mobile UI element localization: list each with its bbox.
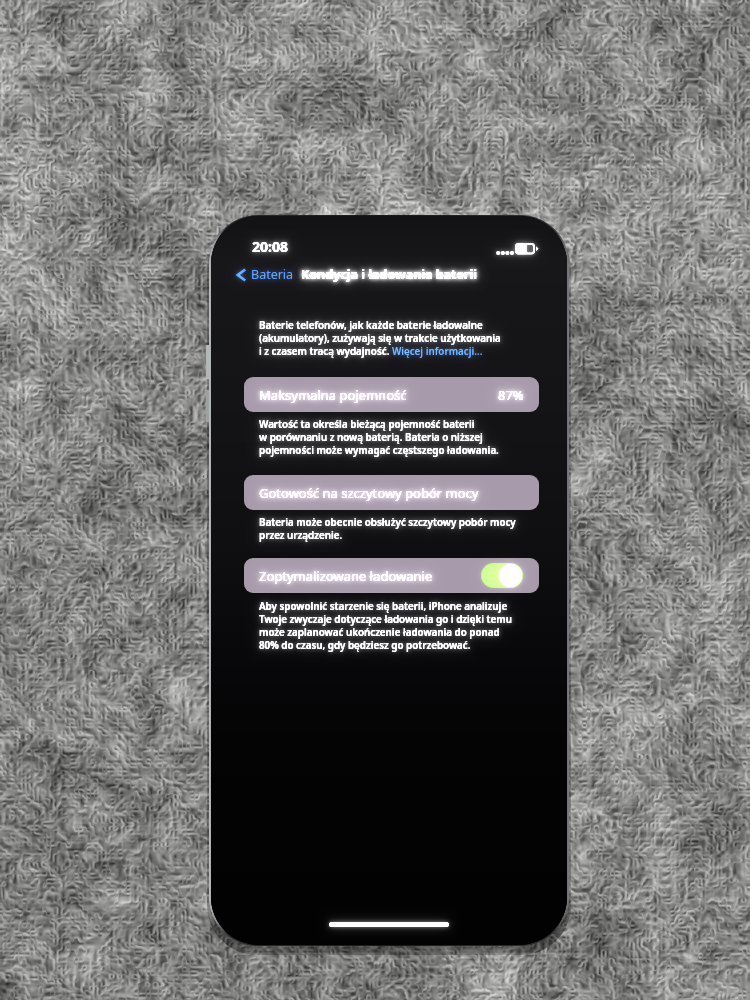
staticText: 80% do czasu, gdy będziesz go potrzebowa…: [259, 639, 471, 652]
staticText: 87%: [498, 386, 524, 404]
staticText: Wartość ta określa bieżącą pojemność bat…: [259, 418, 475, 431]
staticText: w porównaniu z nową baterią. Bateria o n…: [259, 431, 483, 444]
staticText: 20:08: [252, 237, 288, 256]
staticText: przez urządzenie.: [259, 529, 343, 542]
staticText: Bateria: [251, 266, 294, 283]
staticText: Wartość ta określa bieżącą pojemność bat…: [259, 418, 475, 431]
staticText: i z czasem tracą wydajność. Więcej infor…: [259, 345, 483, 358]
staticText: przez urządzenie.: [259, 529, 343, 542]
staticText: w porównaniu z nową baterią. Bateria o n…: [259, 431, 483, 444]
staticText: 87%: [498, 386, 524, 404]
staticText: Zoptymalizowane ładowanie: [259, 567, 433, 585]
staticText: Bateria: [251, 266, 294, 283]
staticText: Bateria: [251, 266, 294, 283]
staticText: w porównaniu z nową baterią. Bateria o n…: [259, 431, 483, 444]
staticText: Bateria: [251, 266, 294, 283]
staticText: Bateria może obecnie obsłużyć szczytowy …: [259, 516, 516, 529]
staticText: Kondycja i ładowanie baterii: [301, 266, 478, 283]
button[interactable]: Gotowość na szczytowy pobór mocy: [244, 475, 539, 510]
button[interactable]: Zoptymalizowane ładowanie: [244, 558, 539, 593]
staticText: może zaplanować ukończenie ładowania do …: [259, 626, 500, 639]
staticText: Bateria może obecnie obsłużyć szczytowy …: [259, 516, 516, 529]
staticText: Baterie telefonów, jak każde baterie ład…: [259, 319, 483, 332]
button[interactable]: Back to Bateria: [236, 266, 294, 283]
staticText: (akumulatory), zużywają się w trakcie uż…: [259, 332, 501, 345]
staticText: Aby spowolnić starzenie się baterii, iPh…: [259, 600, 508, 613]
staticText: 20:08: [252, 237, 288, 256]
staticText: (akumulatory), zużywają się w trakcie uż…: [259, 332, 501, 345]
staticText: Wartość ta określa bieżącą pojemność bat…: [259, 418, 475, 431]
staticText: Bateria może obecnie obsłużyć szczytowy …: [259, 516, 516, 529]
button[interactable]: Zoptymalizowane ładowanie, on: [481, 563, 523, 588]
staticText: Maksymalna pojemność: [259, 386, 407, 404]
button[interactable]: Maksymalna pojemność: [244, 377, 539, 412]
staticText: przez urządzenie.: [259, 529, 343, 542]
staticText: Maksymalna pojemność: [259, 386, 407, 404]
staticText: Twoje zwyczaje dotyczące ładowania go i …: [259, 613, 512, 626]
staticText: Twoje zwyczaje dotyczące ładowania go i …: [259, 613, 512, 626]
staticText: Bateria: [251, 266, 294, 283]
staticText: Gotowość na szczytowy pobór mocy: [259, 484, 479, 502]
staticText: pojemności może wymagać częstszego ładow…: [259, 444, 499, 457]
staticText: i z czasem tracą wydajność. Więcej infor…: [259, 345, 483, 358]
staticText: może zaplanować ukończenie ładowania do …: [259, 626, 500, 639]
staticText: 87%: [498, 386, 524, 404]
staticText: 80% do czasu, gdy będziesz go potrzebowa…: [259, 639, 471, 652]
staticText: Gotowość na szczytowy pobór mocy: [259, 484, 479, 502]
staticText: pojemności może wymagać częstszego ładow…: [259, 444, 499, 457]
staticText: Zoptymalizowane ładowanie: [259, 567, 433, 585]
staticText: Aby spowolnić starzenie się baterii, iPh…: [259, 600, 508, 613]
staticText: Twoje zwyczaje dotyczące ładowania go i …: [259, 613, 512, 626]
staticText: 20:08: [252, 237, 288, 256]
staticText: Kondycja i ładowanie baterii: [301, 266, 478, 283]
staticText: Kondycja i ładowanie baterii: [301, 266, 478, 283]
staticText: może zaplanować ukończenie ładowania do …: [259, 626, 500, 639]
staticText: 80% do czasu, gdy będziesz go potrzebowa…: [259, 639, 471, 652]
staticText: i z czasem tracą wydajność. Więcej infor…: [259, 345, 483, 358]
staticText: Kondycja i ładowanie baterii: [301, 266, 478, 283]
staticText: Baterie telefonów, jak każde baterie ład…: [259, 319, 483, 332]
staticText: Zoptymalizowane ładowanie: [259, 567, 433, 585]
staticText: Aby spowolnić starzenie się baterii, iPh…: [259, 600, 508, 613]
staticText: Kondycja i ładowanie baterii: [301, 266, 478, 283]
staticText: Gotowość na szczytowy pobór mocy: [259, 484, 479, 502]
staticText: Baterie telefonów, jak każde baterie ład…: [259, 319, 483, 332]
staticText: (akumulatory), zużywają się w trakcie uż…: [259, 332, 501, 345]
staticText: Maksymalna pojemność: [259, 386, 407, 404]
staticText: pojemności może wymagać częstszego ładow…: [259, 444, 499, 457]
